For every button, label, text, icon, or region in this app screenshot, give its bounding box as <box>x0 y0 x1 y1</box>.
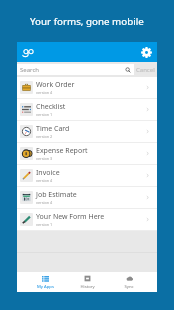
staticText: version 4 <box>36 178 53 183</box>
staticText: Cancel <box>136 66 155 74</box>
staticText: Search <box>20 66 39 74</box>
staticText: version 4 <box>36 200 53 205</box>
button[interactable]: Work Order <box>17 77 157 98</box>
button[interactable]: Job Estimate <box>17 187 157 208</box>
staticText: Work Order <box>36 80 75 90</box>
staticText: Your New Form Here <box>36 212 105 222</box>
button[interactable]: Your New Form Here <box>17 209 157 230</box>
button[interactable]: Cancel <box>134 62 157 77</box>
button[interactable]: Invoice <box>17 165 157 186</box>
staticText: version 1 <box>36 222 53 227</box>
staticText: Expense Report <box>36 146 88 156</box>
button[interactable]: Expense Report <box>17 143 157 164</box>
button[interactable]: History <box>66 272 108 292</box>
staticText: version 1 <box>36 112 53 117</box>
button[interactable]: Search <box>17 64 134 75</box>
staticText: Your forms, gone mobile <box>30 15 144 28</box>
staticText: version 4 <box>36 90 53 95</box>
staticText: Job Estimate <box>36 190 77 200</box>
staticText: Sync <box>124 284 134 290</box>
staticText: My Apps <box>37 284 54 290</box>
staticText: Checklist <box>36 102 66 112</box>
button[interactable]: Settings <box>139 45 153 59</box>
button[interactable]: Sync <box>108 272 150 292</box>
staticText: version 3 <box>36 156 53 161</box>
button[interactable]: Checklist <box>17 99 157 120</box>
button[interactable]: Time Card <box>17 121 157 142</box>
staticText: Time Card <box>36 124 70 134</box>
staticText: Invoice <box>36 168 60 178</box>
staticText: History <box>80 284 95 290</box>
staticText: version 2 <box>36 134 53 139</box>
button[interactable]: My Apps <box>24 272 66 292</box>
